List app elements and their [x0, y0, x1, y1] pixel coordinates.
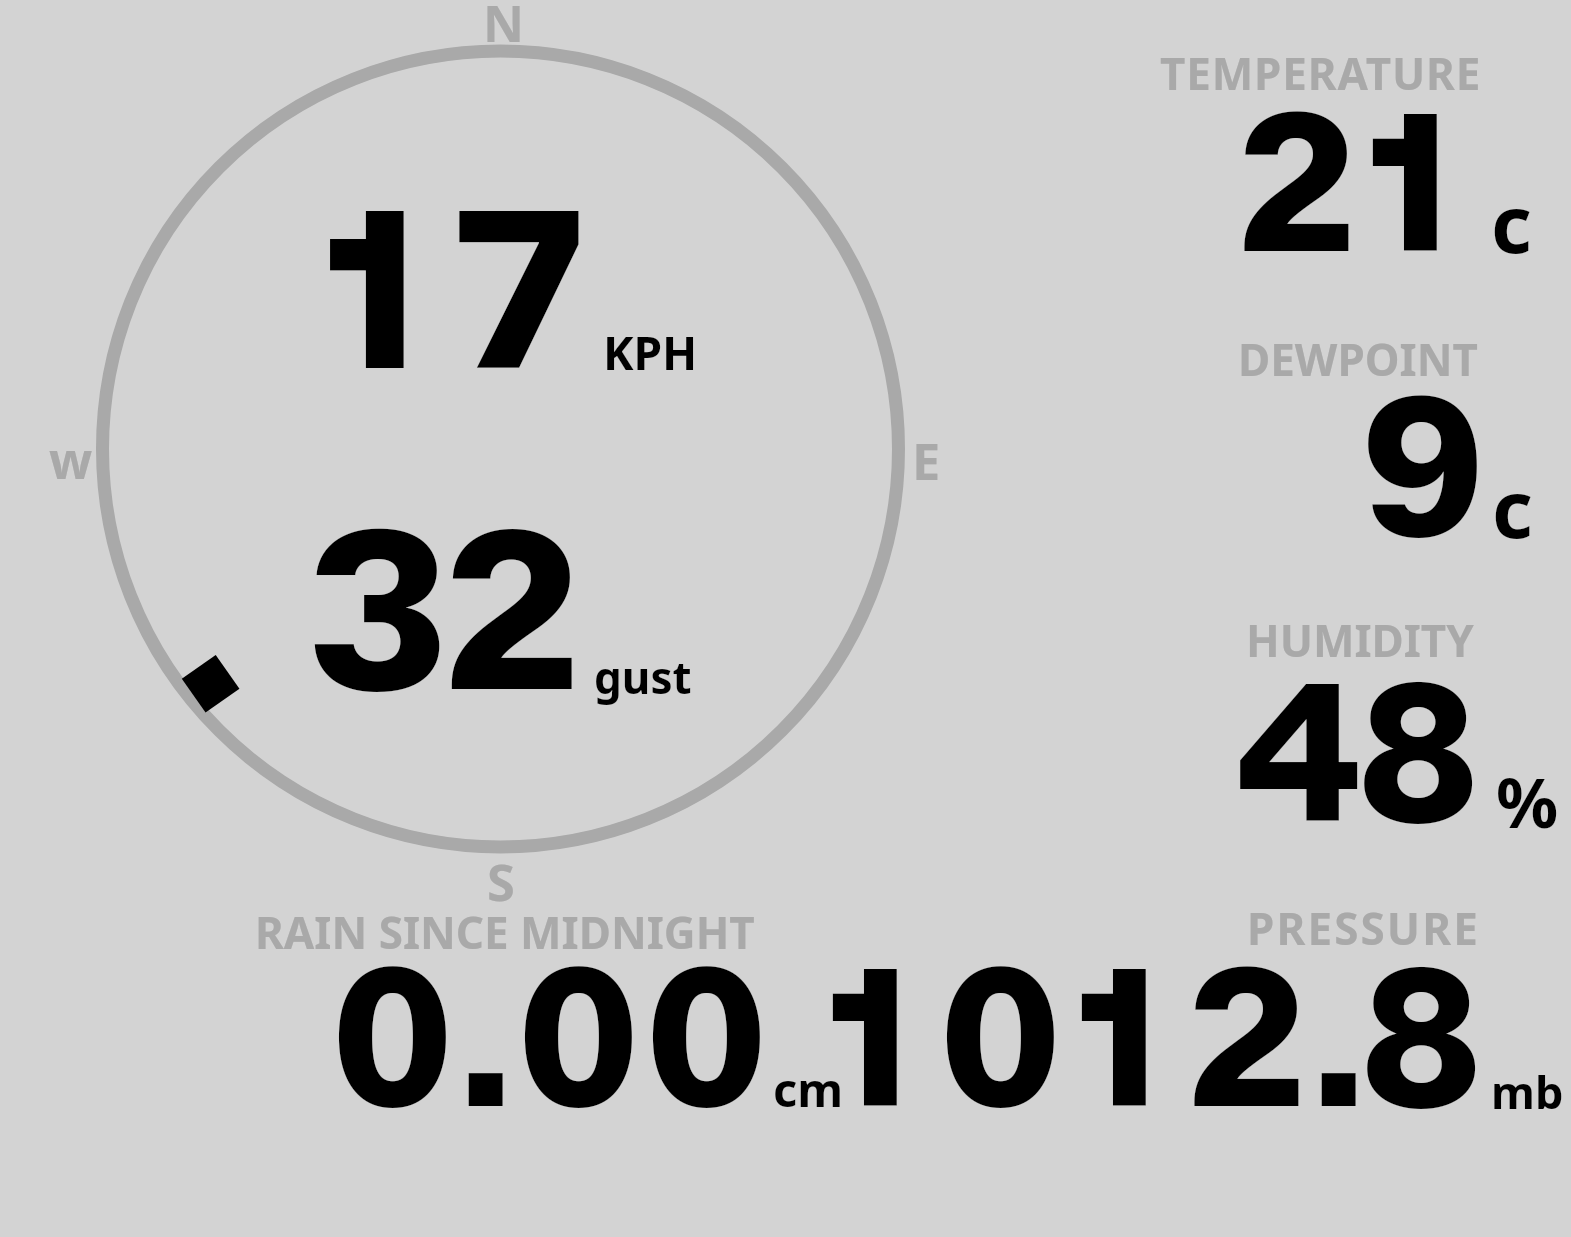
staticText: 8: [1358, 922, 1485, 1154]
staticText: 2: [1185, 922, 1308, 1154]
staticText: c: [1491, 169, 1532, 277]
staticText: KPH: [603, 321, 698, 384]
staticText: DEWPOINT: [1238, 329, 1478, 389]
staticText: 0: [643, 922, 770, 1154]
staticText: 7: [454, 156, 584, 423]
staticText: .: [457, 922, 515, 1154]
staticText: c: [1492, 454, 1533, 562]
staticText: w: [49, 425, 93, 494]
staticText: 1: [1365, 67, 1453, 299]
staticText: 4: [1234, 637, 1364, 869]
button[interactable]: Humidity 48 percent: [1000, 598, 1571, 848]
button[interactable]: Dewpoint 9 c: [1000, 315, 1571, 565]
staticText: TEMPERATURE: [1160, 43, 1482, 103]
staticText: RAIN SINCE MIDNIGHT: [255, 902, 755, 962]
staticText: S: [487, 847, 515, 916]
staticText: 2: [441, 477, 583, 744]
staticText: HUMIDITY: [1246, 610, 1474, 670]
staticText: 2: [1235, 67, 1358, 299]
staticText: cm: [773, 1057, 844, 1121]
staticText: 0: [515, 922, 642, 1154]
staticText: PRESSURE: [1247, 898, 1480, 958]
button[interactable]: Rain since midnight 0.00 cm: [230, 885, 930, 1135]
staticText: 0: [937, 922, 1064, 1154]
staticText: %: [1496, 754, 1559, 848]
staticText: 9: [1359, 351, 1487, 583]
staticText: 1: [321, 156, 422, 423]
staticText: 1: [1074, 922, 1162, 1154]
staticText: 8: [1355, 637, 1482, 869]
staticText: 3: [304, 477, 451, 744]
button[interactable]: Pressure 1012.8 mb: [940, 885, 1571, 1135]
staticText: gust: [594, 647, 692, 707]
staticText: 0: [329, 922, 456, 1154]
staticText: .: [1310, 922, 1368, 1154]
staticText: 1: [825, 922, 913, 1154]
staticText: E: [912, 426, 941, 495]
staticText: N: [483, 0, 525, 57]
button[interactable]: Temperature 21 c: [1000, 30, 1571, 280]
staticText: mb: [1491, 1061, 1564, 1122]
button[interactable]: Wind 17 KPH gusting 32 from the south we…: [86, 20, 916, 880]
